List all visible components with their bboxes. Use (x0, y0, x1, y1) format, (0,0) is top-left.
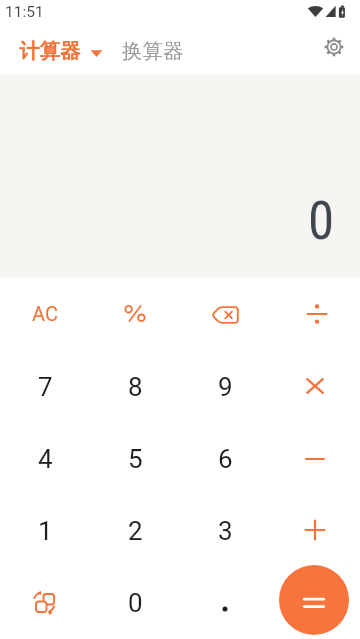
staticText: 换算器 (122, 38, 184, 64)
button[interactable] (322, 35, 346, 59)
staticText: AC (32, 302, 58, 325)
button[interactable] (270, 495, 360, 567)
button[interactable]: 5 (90, 423, 180, 495)
staticText: 计算器 (19, 38, 81, 64)
button[interactable]: 2 (90, 495, 180, 567)
button[interactable]: 1 (0, 495, 90, 567)
staticText: 8 (128, 372, 143, 402)
button[interactable] (180, 277, 270, 350)
button[interactable] (279, 565, 349, 635)
button[interactable]: 3 (180, 495, 270, 567)
staticText: 7 (38, 372, 53, 402)
staticText: 11:51 (5, 3, 44, 21)
staticText: 9 (218, 372, 233, 402)
staticText: 0 (128, 588, 143, 618)
button[interactable] (0, 567, 90, 639)
button[interactable] (90, 277, 180, 350)
button[interactable] (270, 277, 360, 350)
staticText: 3 (218, 516, 233, 546)
button[interactable]: 换算器 (122, 38, 184, 64)
staticText: 1 (38, 516, 53, 546)
button[interactable]: AC (0, 277, 90, 350)
button[interactable]: 0 (90, 567, 180, 639)
staticText: 5 (128, 444, 143, 474)
button[interactable]: 计算器 (19, 38, 103, 64)
button[interactable]: 7 (0, 350, 90, 423)
button[interactable] (270, 423, 360, 495)
button[interactable]: 6 (180, 423, 270, 495)
button[interactable] (270, 567, 360, 639)
button[interactable] (270, 350, 360, 423)
staticText: 6 (218, 444, 233, 474)
button[interactable]: 4 (0, 423, 90, 495)
button[interactable]: 9 (180, 350, 270, 423)
staticText: 4 (38, 444, 53, 474)
staticText: 2 (128, 516, 143, 546)
button[interactable]: 8 (90, 350, 180, 423)
staticText: 0 (308, 190, 335, 252)
button[interactable] (180, 567, 270, 639)
